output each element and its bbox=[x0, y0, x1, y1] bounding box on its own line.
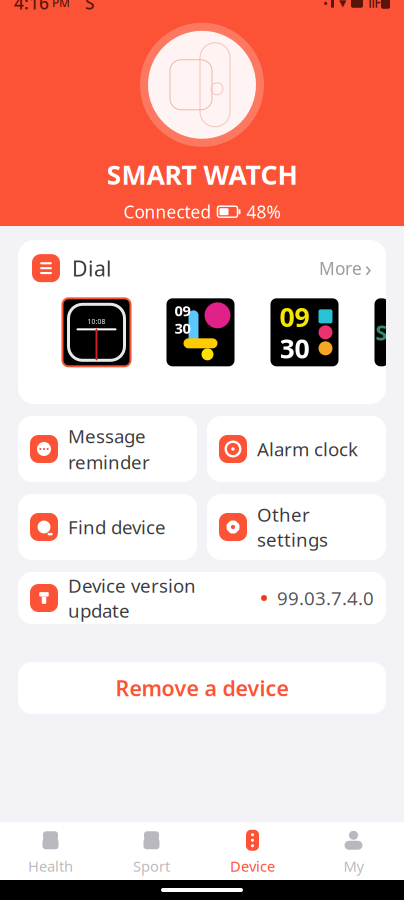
button[interactable]: Watch face bbox=[347, 298, 404, 366]
button[interactable]: Sport bbox=[101, 820, 202, 882]
button[interactable]: Other settings bbox=[207, 494, 386, 560]
staticText: ⊪ bbox=[363, 0, 381, 11]
staticText: Device version update bbox=[68, 573, 196, 623]
staticText: › bbox=[365, 254, 372, 282]
staticText: S bbox=[70, 0, 95, 14]
staticText: 30 bbox=[174, 318, 190, 338]
staticText: 4:16 bbox=[14, 0, 49, 14]
staticText: 09 bbox=[174, 301, 190, 320]
button[interactable]: Remove a device bbox=[18, 662, 386, 714]
staticText: Find device bbox=[68, 515, 166, 539]
staticText: Remove a device bbox=[115, 674, 288, 702]
staticText: 99.03.7.4.0 bbox=[277, 586, 374, 610]
staticText: Health bbox=[28, 856, 73, 876]
staticText: Message bbox=[68, 424, 146, 448]
staticText: S bbox=[375, 318, 387, 346]
staticText: 10:08 bbox=[87, 317, 105, 326]
staticText: Other settings bbox=[257, 502, 328, 552]
staticText: Alarm clock bbox=[257, 437, 358, 461]
staticText: 48% bbox=[246, 200, 280, 223]
button[interactable]: Watch face bbox=[166, 298, 234, 366]
button[interactable]: More bbox=[319, 254, 372, 282]
button[interactable]: My bbox=[303, 820, 404, 882]
staticText: SMART WATCH bbox=[106, 157, 297, 192]
button[interactable]: Watch face bbox=[62, 298, 130, 366]
staticText: More bbox=[319, 257, 362, 280]
button[interactable]: Alarm clock bbox=[207, 416, 386, 482]
button[interactable]: Health bbox=[0, 820, 101, 882]
staticText: ▾ bbox=[334, 0, 351, 11]
staticText: PM bbox=[49, 0, 70, 11]
staticText: Device bbox=[230, 856, 275, 876]
staticText: My bbox=[343, 856, 363, 876]
staticText: Connected bbox=[123, 200, 211, 223]
staticText: Dial bbox=[60, 254, 112, 282]
staticText: Sport bbox=[133, 856, 170, 876]
button[interactable]: Watch face bbox=[270, 298, 338, 366]
staticText: • bbox=[323, 0, 331, 12]
staticText: reminder bbox=[68, 449, 150, 474]
button[interactable]: Device version update bbox=[18, 572, 386, 624]
button[interactable]: Device bbox=[202, 820, 303, 882]
button[interactable]: Find device bbox=[18, 494, 197, 560]
button[interactable]: Message bbox=[18, 416, 197, 482]
staticText: 30 bbox=[279, 330, 309, 366]
staticText: 09 bbox=[279, 299, 309, 334]
